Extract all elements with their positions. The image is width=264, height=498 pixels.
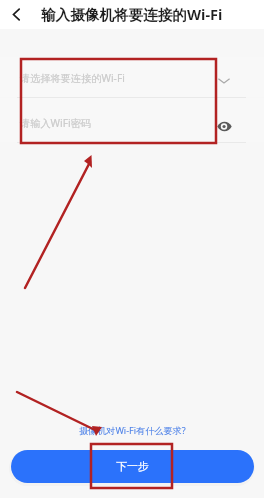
button[interactable]: 请输入WiFi密码 xyxy=(0,98,264,142)
other: Expand xyxy=(218,75,230,87)
button[interactable]: Show password xyxy=(216,118,232,134)
button[interactable]: Back xyxy=(6,4,26,24)
staticText: 下一步 xyxy=(116,459,149,473)
staticText: 请输入WiFi密码 xyxy=(20,116,91,130)
staticText: 请选择将要连接的Wi-Fi xyxy=(20,71,125,85)
button[interactable]: 请选择将要连接的Wi-Fi xyxy=(0,57,264,97)
button[interactable]: 下一步 xyxy=(11,450,254,483)
staticText: 输入摄像机将要连接的Wi-Fi xyxy=(41,4,223,24)
button[interactable]: 摄像机对Wi-Fi有什么要求? xyxy=(75,422,190,438)
